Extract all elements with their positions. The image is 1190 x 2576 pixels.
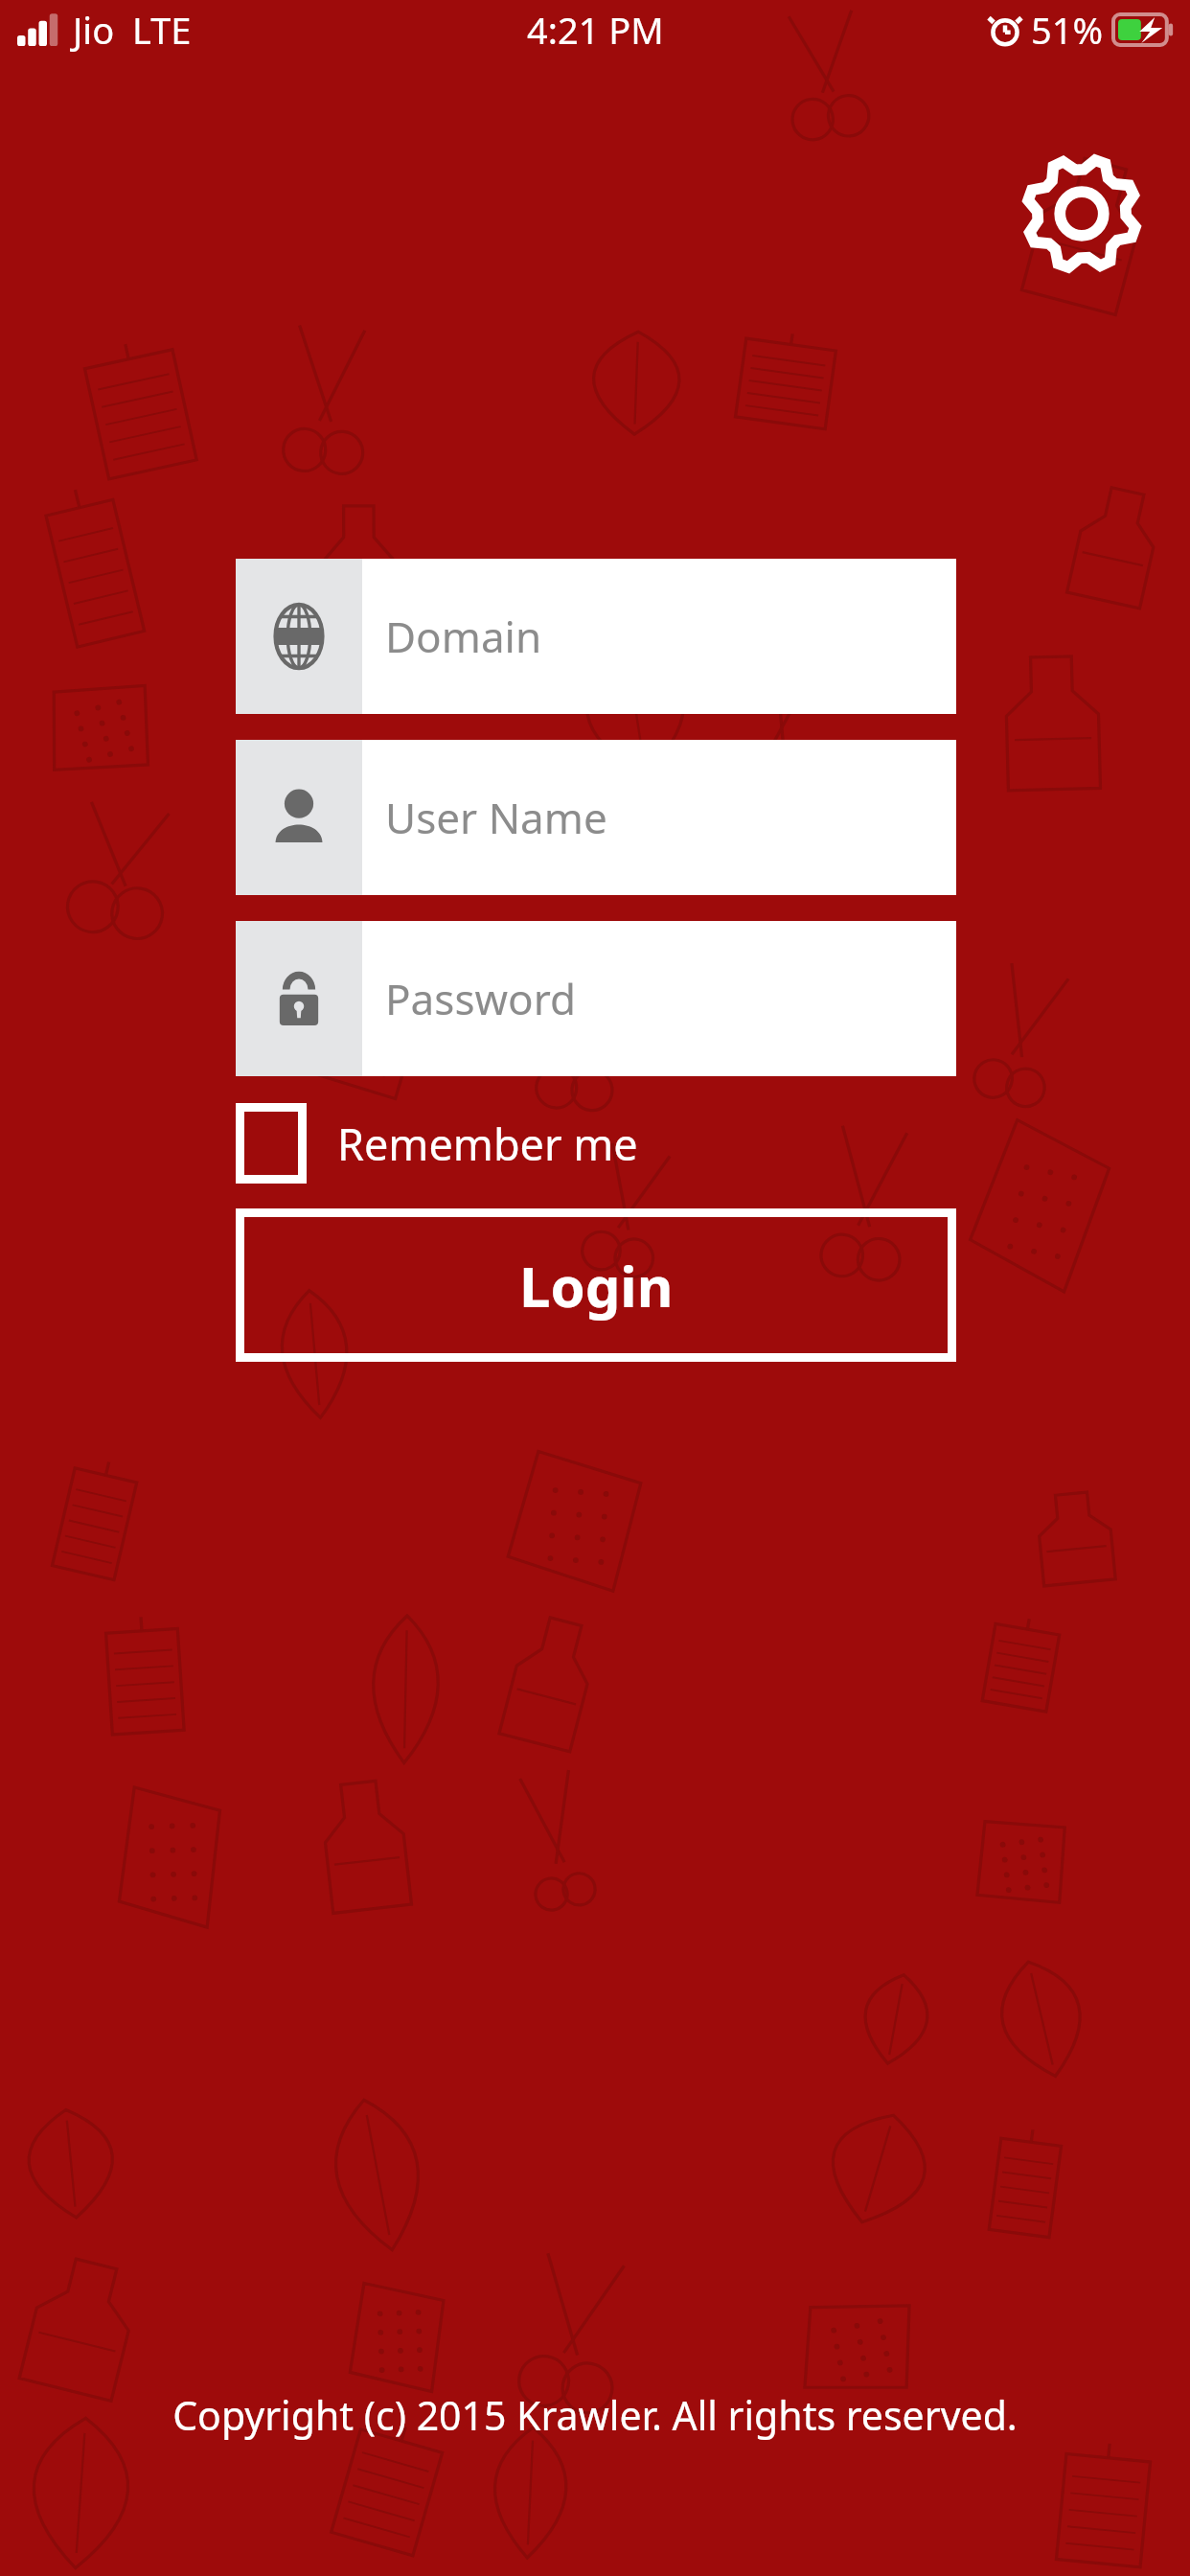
staticText: LTE: [132, 5, 192, 55]
staticText: 4:21 PM: [527, 5, 664, 55]
staticText: Password: [385, 970, 577, 1027]
staticText: User Name: [385, 789, 607, 846]
button[interactable]: Password: [236, 921, 956, 1076]
button[interactable]: Login: [236, 1208, 956, 1362]
button[interactable]: Settings: [1010, 142, 1154, 286]
button[interactable]: Remember me: [236, 1103, 638, 1184]
staticText: Domain: [385, 608, 542, 665]
button[interactable]: User Name: [236, 740, 956, 895]
staticText: Copyright (c) 2015 Krawler. All rights r…: [172, 2388, 1018, 2442]
staticText: Login: [519, 1248, 674, 1323]
staticText: Jio: [73, 5, 115, 55]
button[interactable]: Domain: [236, 559, 956, 714]
staticText: 51%: [1031, 5, 1104, 55]
staticText: Remember me: [337, 1115, 638, 1173]
